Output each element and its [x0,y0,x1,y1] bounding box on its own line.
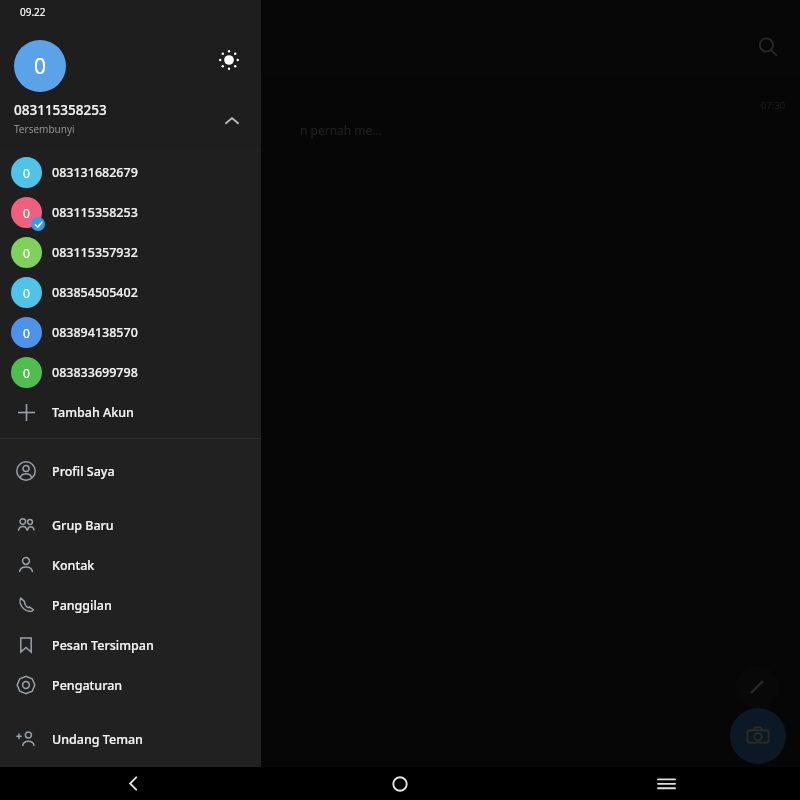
button[interactable]: Profil Saya [0,451,261,491]
staticText: Pengaturan [52,677,123,694]
button[interactable]: Home [266,767,533,800]
button[interactable]: 07:30 [0,85,800,151]
button[interactable]: 0 [0,352,261,392]
staticText: 0 [23,365,30,381]
staticText: 0 [23,165,30,181]
button[interactable]: Pengaturan [0,665,261,705]
staticText: Kontak [52,557,95,574]
button[interactable]: Tambah Akun [0,392,261,432]
staticText: Pesan Tersimpan [52,637,154,654]
button[interactable]: Undang Teman [0,719,261,759]
button[interactable]: 0 [0,152,261,192]
staticText: Tips Telegram [52,771,136,788]
staticText: Tersembunyi [14,122,75,136]
staticText: 083115358253 [52,204,138,221]
button[interactable]: Kontak [0,545,261,585]
button[interactable]: Pesan Tersimpan [0,625,261,665]
staticText: 083131682679 [52,164,138,181]
button[interactable]: Search [750,29,786,65]
staticText: 083833699798 [52,364,138,381]
staticText: 083115357932 [52,244,138,261]
staticText: 083854505402 [52,284,138,301]
staticText: 0 [34,52,47,81]
staticText: 0 [23,285,30,301]
button[interactable]: Compose message [736,666,778,708]
staticText: 07:30 [761,99,786,112]
button[interactable]: Panggilan [0,585,261,625]
button[interactable]: Recent apps [533,767,800,800]
staticText: 09.22 [20,5,46,19]
staticText: Profil Saya [52,463,115,480]
staticText: Grup Baru [52,517,114,534]
staticText: 083894138570 [52,324,138,341]
button[interactable]: 0 [0,312,261,352]
staticText: 0 [23,325,30,341]
button[interactable]: Toggle theme [211,42,247,78]
button[interactable]: Back [0,767,266,800]
button[interactable]: 0 [0,232,261,272]
staticText: 0 [23,245,30,261]
staticText: Panggilan [52,597,112,614]
button[interactable]: Tips Telegram [0,759,261,799]
button[interactable]: 0 [14,40,66,92]
button[interactable]: Grup Baru [0,505,261,545]
button[interactable]: Collapse accounts [215,104,249,138]
staticText: Tambah Akun [52,404,134,421]
staticText: n pernah me… [300,122,382,138]
staticText: Undang Teman [52,731,143,748]
button[interactable]: 0 [0,192,261,232]
button[interactable]: 0 [0,272,261,312]
staticText: 083115358253 [14,101,107,119]
button[interactable]: Camera [730,708,786,764]
staticText: 0 [23,205,30,221]
